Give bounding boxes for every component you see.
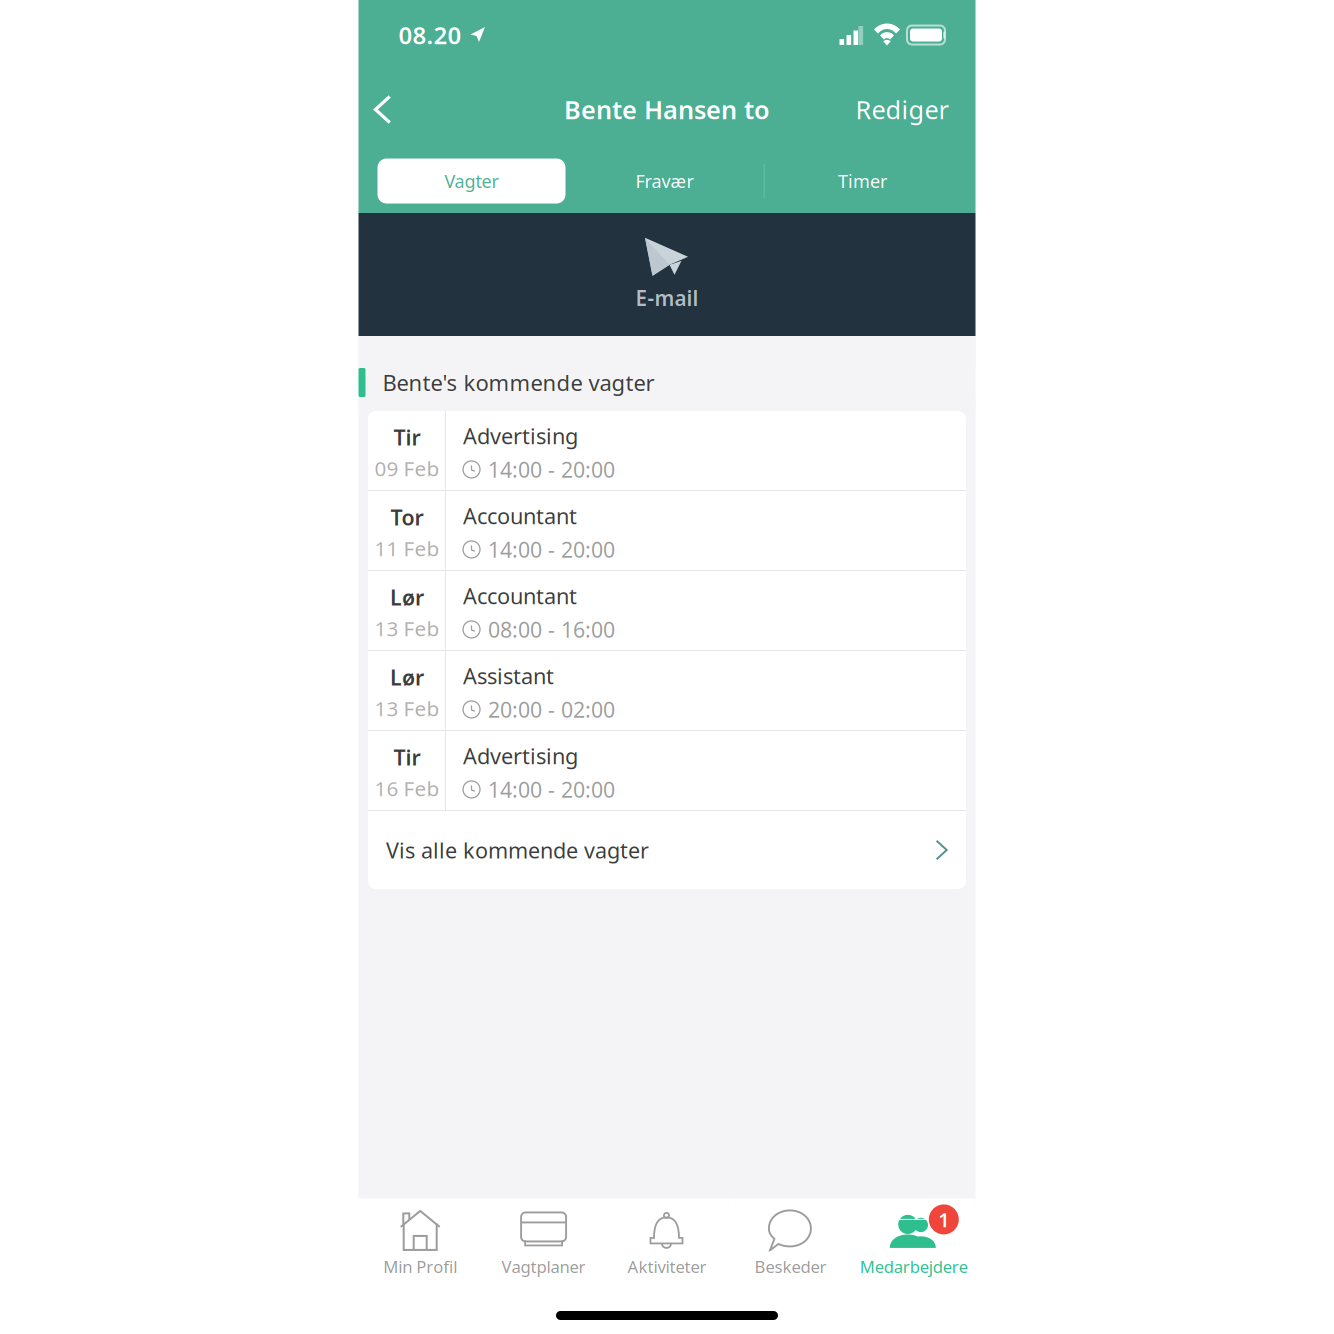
staticText: Vagtplaner: [502, 1255, 586, 1277]
staticText: 09 Feb: [374, 454, 439, 482]
staticText: Accountant: [463, 581, 577, 610]
button[interactable]: Tor: [368, 491, 966, 570]
button[interactable]: Min Profil: [358, 1202, 482, 1282]
staticText: 14:00 - 20:00: [488, 535, 615, 564]
staticText: Advertising: [463, 741, 578, 770]
staticText: 08.20: [398, 19, 461, 51]
staticText: 13 Feb: [374, 614, 439, 642]
button[interactable]: 1: [852, 1202, 975, 1282]
staticText: Medarbejdere: [860, 1255, 968, 1277]
button[interactable]: Vagtplaner: [482, 1202, 605, 1282]
staticText: Lør: [390, 583, 424, 611]
button[interactable]: Lør: [368, 651, 966, 730]
staticText: Beskeder: [754, 1255, 826, 1277]
staticText: Aktiviteter: [627, 1255, 706, 1277]
staticText: Tor: [390, 503, 423, 531]
button[interactable]: Lør: [368, 571, 966, 650]
staticText: Rediger: [855, 93, 948, 126]
button[interactable]: E-mail: [358, 213, 975, 336]
staticText: Timer: [838, 169, 887, 193]
button[interactable]: Fravær: [565, 159, 763, 203]
button[interactable]: Beskeder: [729, 1202, 852, 1282]
button[interactable]: Tir: [368, 411, 966, 490]
staticText: Tir: [393, 743, 420, 771]
staticText: 08:00 - 16:00: [488, 615, 615, 644]
staticText: Vis alle kommende vagter: [386, 836, 649, 864]
staticText: 16 Feb: [374, 774, 439, 802]
staticText: Bente's kommende vagter: [382, 368, 654, 397]
staticText: 1: [938, 1206, 949, 1233]
staticText: Vagter: [444, 169, 498, 193]
staticText: Min Profil: [383, 1255, 457, 1277]
staticText: 11 Feb: [374, 534, 439, 562]
staticText: 14:00 - 20:00: [488, 775, 615, 804]
staticText: Assistant: [463, 661, 554, 690]
staticText: Lør: [390, 663, 424, 691]
staticText: E-mail: [635, 284, 698, 312]
button[interactable]: Rediger: [855, 83, 948, 135]
button[interactable]: Vis alle kommende vagter: [368, 811, 966, 889]
staticText: Fravær: [635, 169, 693, 193]
staticText: Tir: [393, 423, 420, 451]
staticText: Accountant: [463, 501, 577, 530]
button[interactable]: Timer: [763, 159, 961, 203]
staticText: 14:00 - 20:00: [488, 455, 615, 484]
button[interactable]: Aktiviteter: [605, 1202, 729, 1282]
button[interactable]: Back: [359, 83, 407, 135]
staticText: Advertising: [463, 421, 578, 450]
button[interactable]: Tir: [368, 731, 966, 810]
staticText: 20:00 - 02:00: [488, 695, 615, 724]
staticText: Bente Hansen to: [564, 93, 770, 126]
staticText: 13 Feb: [374, 694, 439, 722]
button[interactable]: Vagter: [377, 158, 565, 203]
